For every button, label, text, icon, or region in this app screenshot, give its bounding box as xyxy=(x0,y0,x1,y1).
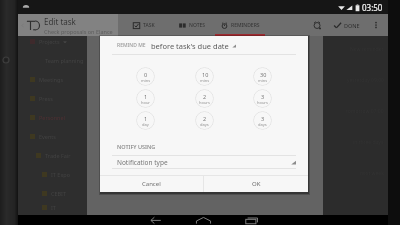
button[interactable]: IT xyxy=(18,203,87,211)
staticText: Personnel xyxy=(39,114,65,121)
staticText: NOTIFY USING xyxy=(117,143,156,150)
staticText: mins xyxy=(258,78,268,83)
staticText: REMIND ME xyxy=(117,42,146,49)
button[interactable]: DONE xyxy=(331,21,362,30)
button[interactable]: 1 xyxy=(136,111,155,130)
button[interactable]: Edit task xyxy=(18,14,118,36)
staticText: hour xyxy=(141,100,151,105)
staticText: Meetings xyxy=(39,76,64,83)
button[interactable]: Notification type xyxy=(117,156,296,168)
staticText: 2 xyxy=(203,93,207,100)
staticText: before task's due date xyxy=(151,41,229,51)
button[interactable]: 2 xyxy=(195,89,214,108)
button[interactable]: 3 xyxy=(253,111,272,130)
button[interactable]: Home xyxy=(186,215,220,225)
button[interactable]: 2 xyxy=(195,111,214,130)
button[interactable]: More options xyxy=(369,18,383,32)
button[interactable]: Add alarm xyxy=(309,17,325,33)
staticText: 2 xyxy=(203,115,207,122)
staticText: DONE xyxy=(344,22,360,29)
button[interactable]: TASK xyxy=(120,14,168,36)
staticText: Press xyxy=(39,95,53,102)
staticText: day xyxy=(142,122,149,127)
staticText: days xyxy=(258,122,267,127)
staticText: TASK xyxy=(143,22,155,29)
button[interactable]: Cancel xyxy=(100,176,203,192)
staticText: hours xyxy=(257,100,268,105)
staticText: Notification type xyxy=(117,158,168,167)
button[interactable]: 1 xyxy=(136,89,155,108)
button[interactable]: NOTES xyxy=(168,14,215,36)
staticText: 3 xyxy=(261,93,265,100)
staticText: days xyxy=(200,122,209,127)
staticText: Edit task xyxy=(44,16,76,27)
staticText: Trade Fair xyxy=(45,152,71,159)
staticText: IT Expo xyxy=(51,171,71,178)
button[interactable]: 10 xyxy=(195,67,214,86)
button[interactable]: REMINDERS xyxy=(215,14,265,36)
staticText: 0 xyxy=(144,71,148,78)
button[interactable]: Personnel xyxy=(18,108,87,127)
staticText: 1 xyxy=(144,115,148,122)
button[interactable]: 3 xyxy=(253,89,272,108)
button[interactable]: Recents xyxy=(234,215,268,225)
staticText: CEBIT xyxy=(51,190,67,197)
staticText: hours xyxy=(199,100,210,105)
staticText: Cancel xyxy=(142,180,161,188)
staticText: Check proposals on Elance xyxy=(44,28,113,35)
staticText: IT xyxy=(51,204,56,211)
button[interactable]: 30 xyxy=(253,67,272,86)
staticText: Team planning xyxy=(45,57,84,64)
staticText: mins xyxy=(141,78,151,83)
staticText: REMINDERS xyxy=(231,22,260,29)
button[interactable]: OK xyxy=(204,176,308,192)
staticText: OK xyxy=(252,180,261,188)
button[interactable]: Back xyxy=(138,215,172,225)
staticText: Projects xyxy=(39,38,60,45)
staticText: 1 xyxy=(144,93,148,100)
button[interactable]: Projects xyxy=(18,32,87,51)
staticText: 3 xyxy=(261,115,265,122)
button[interactable]: REMIND ME xyxy=(117,38,296,53)
staticText: NOTES xyxy=(189,22,205,29)
button[interactable]: 0 xyxy=(136,67,155,86)
staticText: 30 xyxy=(260,71,267,78)
staticText: mins xyxy=(200,78,210,83)
staticText: 03:50 xyxy=(362,2,383,13)
staticText: Events xyxy=(39,133,56,140)
staticText: 10 xyxy=(202,71,209,78)
